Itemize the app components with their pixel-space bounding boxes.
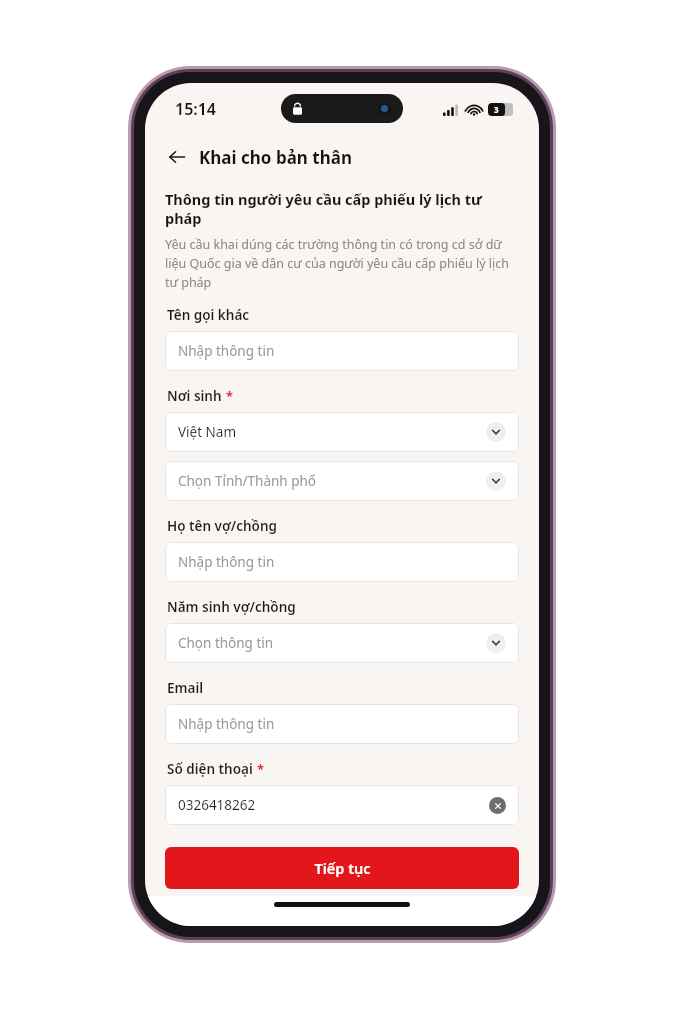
button[interactable]: Tiếp tục [165,847,519,889]
staticText: 3 [494,104,499,115]
staticText: Nhập thông tin [178,342,506,360]
staticText: Khai cho bản thân [199,146,352,169]
staticText: Tiếp tục [314,858,371,878]
staticText: Họ tên vợ/chồng [167,517,277,535]
button[interactable]: Nhập thông tin [165,542,519,582]
staticText: Yêu cầu khai dúng các trường thông tin c… [165,236,519,290]
other: Clear text [489,797,506,814]
button[interactable]: Chọn Tỉnh/Thành phố [165,461,519,501]
staticText: Nơi sinh [167,387,222,405]
staticText: Năm sinh vợ/chồng [167,598,296,616]
staticText: Email [167,679,204,697]
staticText: Chọn thông tin [178,634,486,652]
button[interactable]: Chọn thông tin [165,623,519,663]
staticText: Nhập thông tin [178,553,506,571]
button[interactable]: Back [161,141,193,173]
button[interactable]: Việt Nam [165,412,519,452]
staticText: Nhập thông tin [178,715,506,733]
staticText: Chọn Tỉnh/Thành phố [178,472,486,490]
button[interactable]: 0326418262 [165,785,519,825]
staticText: Số diện thoại [167,760,253,778]
staticText: * [257,760,265,778]
staticText: 0326418262 [178,796,489,814]
button[interactable]: Nhập thông tin [165,331,519,371]
staticText: 15:14 [175,98,217,120]
button[interactable]: Nhập thông tin [165,704,519,744]
staticText: * [226,387,234,405]
staticText: Thông tin người yêu cầu cấp phiếu lý lịc… [165,189,519,228]
staticText: Tên gọi khác [167,306,250,324]
staticText: Việt Nam [178,423,486,441]
